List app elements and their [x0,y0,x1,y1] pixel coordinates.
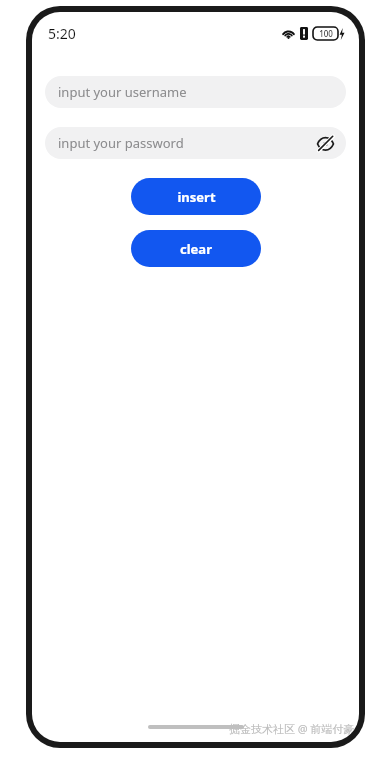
button[interactable]: clear [131,230,261,267]
staticText: insert [177,188,216,206]
staticText: 100 [319,28,333,39]
button[interactable]: input your username [45,76,346,108]
staticText: 掘金技术社区 @ 前端付豪 [229,721,355,736]
staticText: clear [180,240,212,258]
staticText: input your username [58,83,187,101]
staticText: input your password [58,134,184,152]
staticText: 5:20 [48,24,76,43]
button[interactable]: Toggle password visibility [314,132,336,154]
button[interactable]: input your password [45,127,346,159]
button[interactable]: insert [131,178,261,215]
